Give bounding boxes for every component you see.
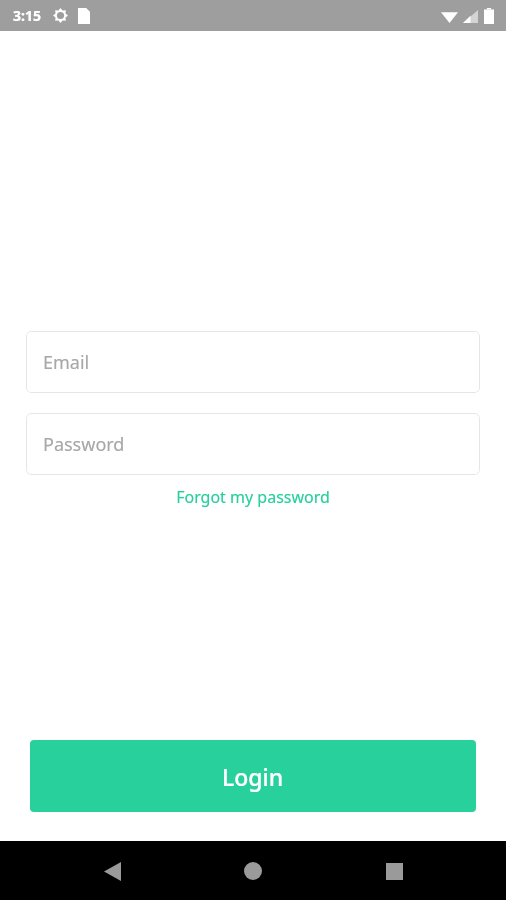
button[interactable]: Login <box>30 740 476 812</box>
button[interactable]: Back <box>92 851 132 891</box>
staticText: Email <box>43 350 90 375</box>
staticText: Password <box>43 432 125 457</box>
staticText: 3:15 <box>13 6 41 25</box>
button[interactable]: Email <box>26 331 480 393</box>
button[interactable]: Password <box>26 413 480 475</box>
button[interactable]: Recent apps <box>374 851 414 891</box>
button[interactable]: Home <box>233 851 273 891</box>
button[interactable]: Forgot my password <box>0 486 506 508</box>
staticText: Login <box>222 761 284 792</box>
staticText: Forgot my password <box>176 486 330 508</box>
